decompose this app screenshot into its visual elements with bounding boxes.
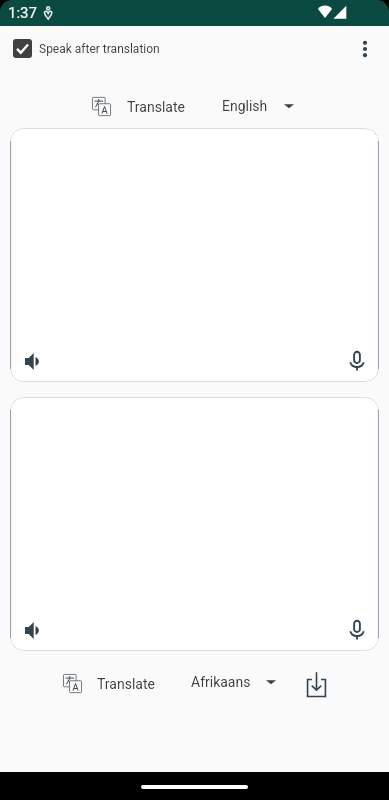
button[interactable]: Afrikaans (185, 668, 282, 696)
button[interactable]: More options (343, 27, 387, 71)
staticText: Speak after translation (39, 42, 160, 56)
button[interactable]: Download translation (300, 666, 332, 702)
button[interactable]: Translate (86, 91, 191, 122)
button[interactable]: Translate (57, 668, 161, 699)
button[interactable]: Listen (17, 346, 47, 376)
staticText: Translate (127, 99, 185, 115)
staticText: 1:37 (8, 4, 37, 22)
staticText: Translate (97, 676, 155, 692)
staticText: Afrikaans (191, 674, 251, 690)
button[interactable]: Speak after translation (7, 33, 166, 64)
button[interactable]: Listen (17, 615, 47, 645)
staticText: English (222, 98, 268, 114)
button[interactable]: English (216, 92, 300, 120)
button[interactable]: Voice input (342, 346, 372, 376)
button[interactable]: Voice input (342, 615, 372, 645)
